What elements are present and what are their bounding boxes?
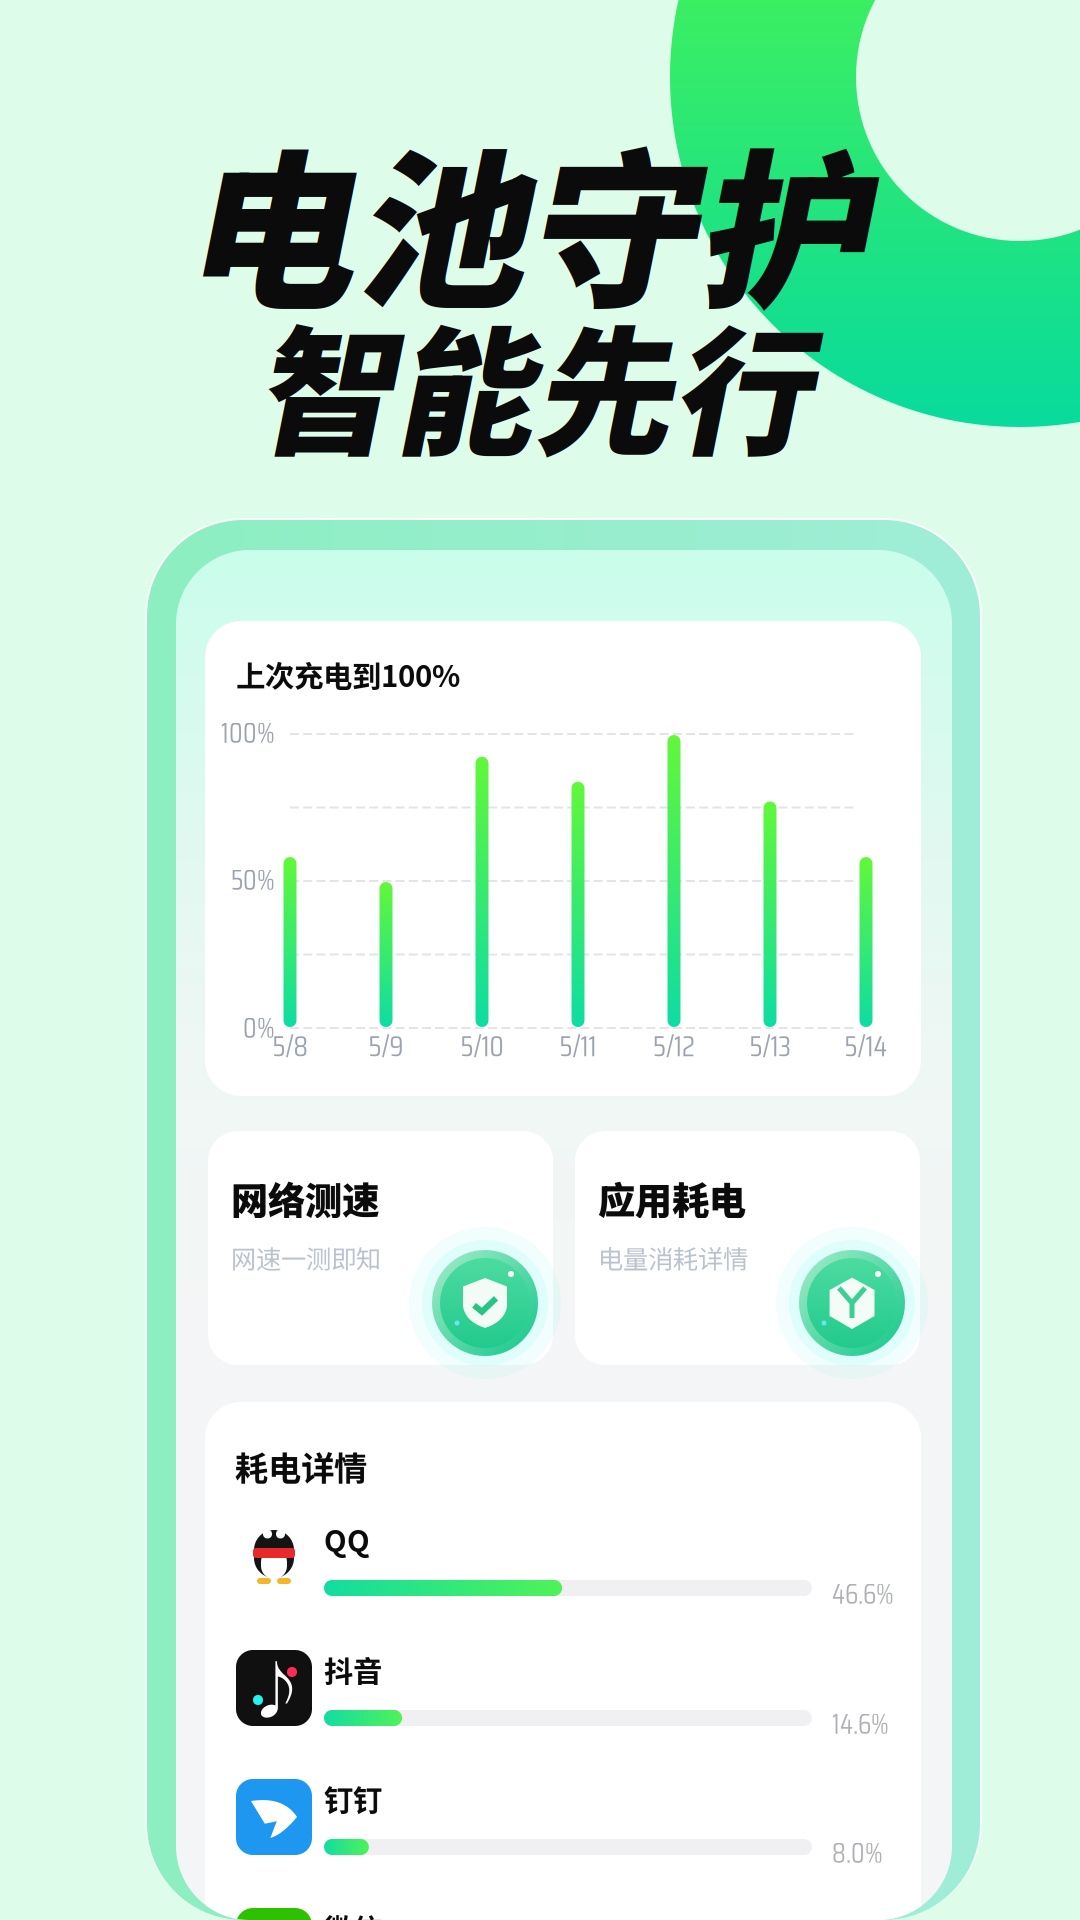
staticText: 5/11 — [559, 1023, 596, 1069]
staticText: 5/8 — [272, 1023, 307, 1069]
button[interactable]: QQ — [236, 1520, 906, 1600]
staticText: 应用耗电 — [598, 1171, 746, 1225]
staticText: 电量消耗详情 — [598, 1239, 748, 1276]
staticText: 耗电详情 — [235, 1442, 367, 1490]
staticText: 网络测速 — [231, 1171, 379, 1225]
staticText: 电池守护 — [182, 96, 866, 343]
button[interactable]: 微信 — [236, 1908, 906, 1920]
staticText: 5/10 — [460, 1023, 503, 1069]
button[interactable]: ♪ — [236, 1650, 906, 1730]
staticText: 100% — [221, 711, 275, 755]
staticText: QQ — [324, 1518, 370, 1560]
button[interactable]: 钉钉 — [236, 1779, 906, 1859]
staticText: 抖音 — [324, 1648, 382, 1690]
button[interactable]: 网络测速 — [208, 1131, 553, 1365]
staticText: 0% — [243, 1006, 275, 1050]
staticText: 上次充电到100% — [236, 653, 460, 695]
staticText: 5/12 — [653, 1023, 695, 1069]
staticText: 5/9 — [368, 1023, 403, 1069]
button[interactable]: 应用耗电 — [575, 1131, 920, 1365]
staticText: 14.6% — [832, 1702, 889, 1746]
staticText: 8.0% — [832, 1831, 883, 1875]
staticText: 钉钉 — [324, 1777, 382, 1819]
staticText: 智能先行 — [254, 283, 810, 484]
staticText: 5/14 — [844, 1023, 887, 1069]
staticText: 50% — [231, 858, 275, 902]
staticText: ♪ — [245, 1642, 306, 1730]
staticText: 5/13 — [749, 1023, 790, 1069]
staticText: 46.6% — [832, 1572, 894, 1616]
staticText: 微信 — [324, 1906, 382, 1920]
staticText: 网速一测即知 — [231, 1239, 381, 1276]
